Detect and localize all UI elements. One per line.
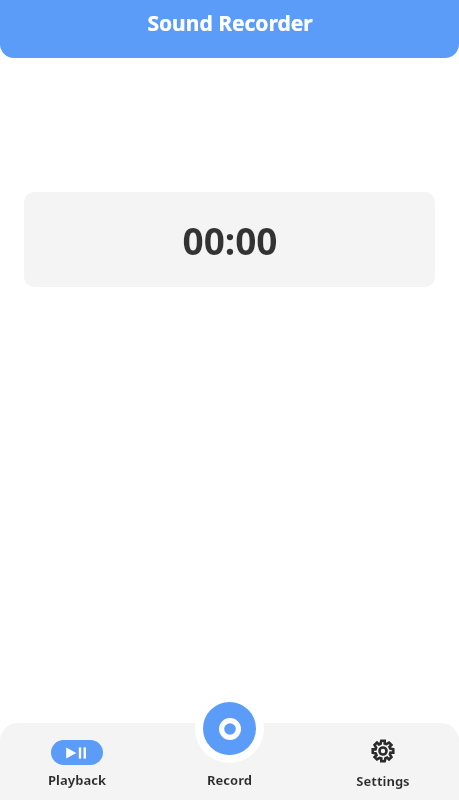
other: Settings [369,737,397,765]
other: Playback [51,740,103,765]
button[interactable]: Record [203,702,256,755]
staticText: 00:00 [182,215,278,265]
staticText: Sound Recorder [147,9,313,38]
button[interactable]: Settings [306,723,459,800]
staticText: Record [207,771,252,789]
button[interactable]: Playback [0,723,153,800]
staticText: Playback [48,771,106,789]
button[interactable]: Record [153,723,306,800]
staticText: Settings [356,772,410,790]
